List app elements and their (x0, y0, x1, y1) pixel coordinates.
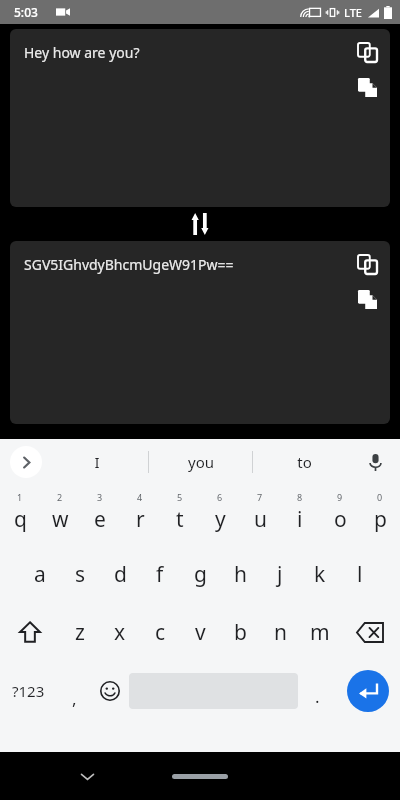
staticText: t (176, 505, 184, 534)
staticText: d (114, 560, 127, 589)
staticText: e (94, 505, 106, 534)
button[interactable]: Home (172, 774, 228, 779)
button[interactable]: n (260, 603, 300, 661)
staticText: 5:03 (14, 4, 38, 20)
button[interactable]: Voice input (358, 445, 392, 479)
button[interactable]: to (253, 439, 356, 485)
staticText: z (75, 618, 85, 647)
button[interactable]: l (340, 545, 380, 603)
button[interactable]: c (140, 603, 180, 661)
button[interactable]: 0 (360, 487, 400, 545)
button[interactable]: a (20, 545, 60, 603)
button[interactable]: 9 (320, 487, 360, 545)
button[interactable]: d (100, 545, 140, 603)
button[interactable]: More suggestions (10, 446, 42, 478)
button[interactable]: ?123 (0, 661, 57, 721)
button[interactable]: f (140, 545, 180, 603)
button[interactable]: Paste (352, 284, 382, 314)
button[interactable]: 3 (80, 487, 120, 545)
staticText: w (52, 505, 69, 534)
staticText: 0 (377, 491, 383, 503)
staticText: v (195, 618, 206, 647)
staticText: g (194, 560, 207, 589)
staticText: q (14, 505, 27, 534)
button[interactable]: Copy (352, 249, 382, 279)
button[interactable]: Copy (352, 37, 382, 67)
button[interactable]: k (300, 545, 340, 603)
button[interactable]: 1 (0, 487, 40, 545)
staticText: i (297, 505, 303, 534)
button[interactable]: j (260, 545, 300, 603)
button[interactable]: h (220, 545, 260, 603)
staticText: 4 (137, 491, 143, 503)
button[interactable]: 8 (280, 487, 320, 545)
button[interactable]: z (60, 603, 100, 661)
button[interactable]: I (46, 439, 148, 485)
button[interactable]: 2 (40, 487, 80, 545)
staticText: s (75, 560, 86, 589)
staticText: . (315, 685, 320, 708)
button[interactable]: 6 (200, 487, 240, 545)
button[interactable]: 5 (160, 487, 200, 545)
staticText: a (34, 560, 46, 589)
button[interactable]: b (220, 603, 260, 661)
button[interactable]: you (149, 439, 252, 485)
staticText: u (254, 505, 267, 534)
button[interactable]: SGV5IGhvdyBhcmUgeW91Pw== (10, 241, 390, 424)
button[interactable]: Swap (183, 207, 217, 241)
staticText: 8 (297, 491, 303, 503)
staticText: 5 (177, 491, 183, 503)
button[interactable]: Shift (0, 603, 60, 661)
button[interactable]: Hide keyboard (70, 759, 104, 793)
staticText: x (114, 618, 126, 647)
staticText: 1 (17, 491, 23, 503)
staticText: o (334, 505, 347, 534)
button[interactable]: v (180, 603, 220, 661)
staticText: b (234, 618, 247, 647)
staticText: f (156, 560, 164, 589)
staticText: r (136, 505, 145, 534)
button[interactable]: , (57, 661, 91, 721)
staticText: LTE (344, 5, 362, 20)
button[interactable]: g (180, 545, 220, 603)
button[interactable]: 7 (240, 487, 280, 545)
staticText: h (234, 560, 247, 589)
staticText: j (277, 560, 283, 589)
button[interactable]: . (298, 661, 336, 721)
button[interactable]: x (100, 603, 140, 661)
staticText: I (94, 452, 100, 472)
staticText: n (274, 618, 287, 647)
button[interactable]: s (60, 545, 100, 603)
button[interactable]: Enter (336, 661, 400, 721)
button[interactable]: m (300, 603, 340, 661)
button[interactable]: Backspace (340, 603, 400, 661)
staticText: m (310, 618, 330, 647)
button[interactable]: Hey how are you? (10, 29, 390, 207)
button[interactable]: 4 (120, 487, 160, 545)
staticText: l (357, 560, 363, 589)
staticText: , (72, 687, 77, 710)
staticText: y (215, 505, 226, 534)
staticText: 7 (257, 491, 263, 503)
staticText: p (374, 505, 387, 534)
button[interactable]: Paste (352, 72, 382, 102)
staticText: you (188, 452, 214, 472)
staticText: ?123 (12, 681, 45, 701)
staticText: SGV5IGhvdyBhcmUgeW91Pw== (24, 255, 234, 274)
staticText: Hey how are you? (24, 43, 140, 62)
button[interactable]: Emoji (91, 661, 129, 721)
staticText: c (155, 618, 166, 647)
staticText: 2 (57, 491, 63, 503)
staticText: 3 (97, 491, 103, 503)
staticText: 9 (337, 491, 343, 503)
staticText: to (297, 452, 312, 472)
staticText: k (314, 560, 326, 589)
staticText: 6 (217, 491, 223, 503)
